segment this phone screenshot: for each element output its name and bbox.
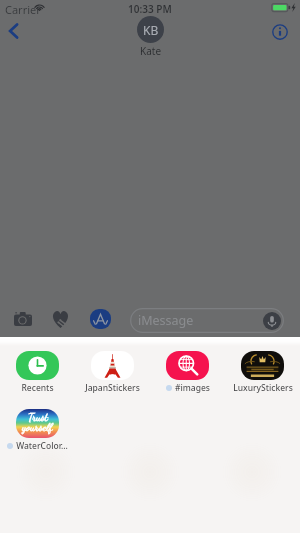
staticText: iMessage bbox=[138, 312, 194, 329]
button[interactable]: Trust bbox=[2, 409, 73, 452]
staticText: Recents bbox=[21, 382, 54, 394]
staticText: #images bbox=[175, 382, 210, 394]
button[interactable]: App Store bbox=[86, 304, 115, 333]
button[interactable]: Recents bbox=[2, 351, 73, 394]
button[interactable]: LuxuryStickers bbox=[227, 351, 298, 394]
staticText: JapanStickers bbox=[85, 382, 140, 394]
button[interactable]: Dictate bbox=[263, 312, 281, 330]
button[interactable]: Details bbox=[268, 20, 292, 44]
button[interactable]: Camera bbox=[8, 304, 37, 333]
button[interactable]: JapanStickers bbox=[77, 351, 148, 394]
button[interactable]: iMessage bbox=[130, 308, 284, 333]
staticText: 10:33 PM bbox=[128, 2, 172, 16]
button[interactable]: Digital Touch bbox=[46, 304, 75, 333]
staticText: LuxuryStickers bbox=[233, 382, 293, 394]
button[interactable]: #images bbox=[152, 351, 223, 394]
staticText: yourself bbox=[22, 421, 53, 434]
button[interactable]: Back bbox=[0, 16, 28, 44]
staticText: KB bbox=[143, 22, 159, 38]
staticText: Kate bbox=[140, 44, 162, 58]
button[interactable]: KB bbox=[137, 16, 164, 58]
staticText: Trust bbox=[28, 411, 48, 424]
staticText: WaterColor... bbox=[16, 440, 68, 452]
staticText: Carrier bbox=[5, 2, 41, 17]
